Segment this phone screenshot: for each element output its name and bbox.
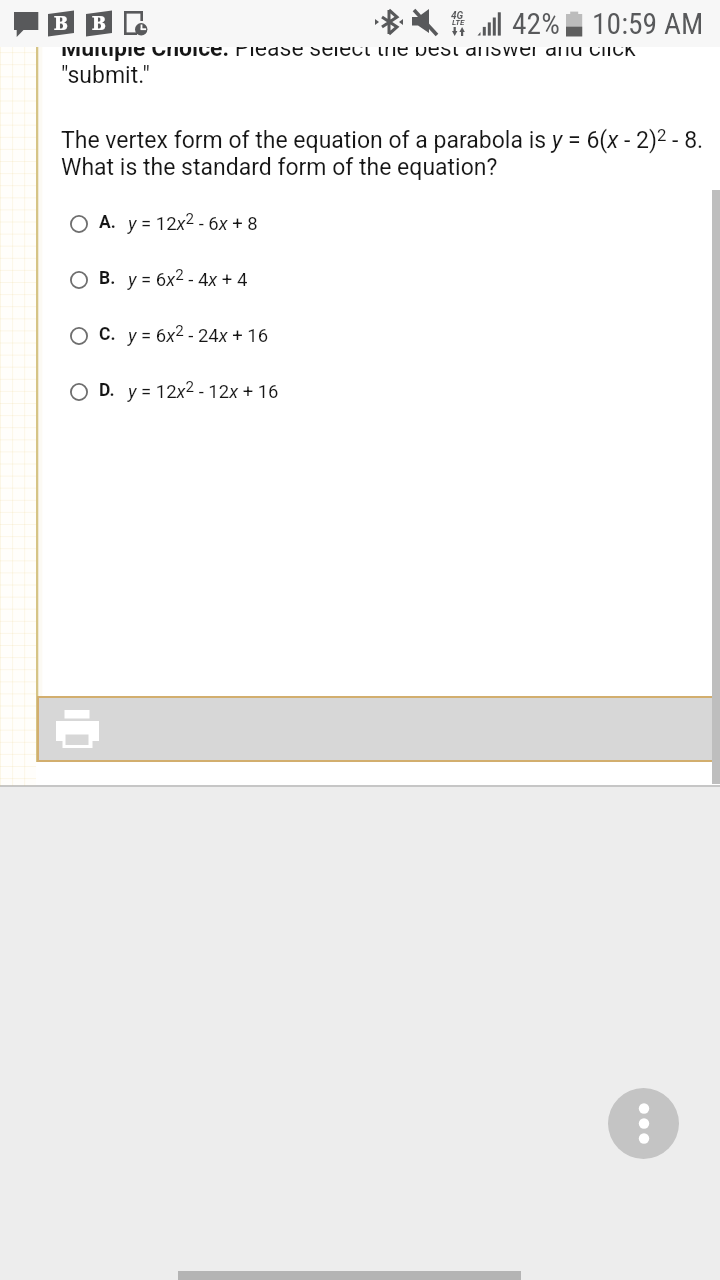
staticText: 42% (512, 7, 560, 42)
staticText: Multiple Choice: Please select the best … (61, 35, 706, 89)
staticText: y = 6x2 - 24x + 16 (128, 322, 269, 346)
staticText: C. (99, 324, 116, 345)
button[interactable]: More options (608, 1088, 679, 1159)
button[interactable]: D. (60, 366, 700, 418)
staticText: B. (99, 268, 116, 289)
staticText: The vertex form of the equation of a par… (61, 125, 706, 181)
staticText: y = 6x2 - 4x + 4 (128, 266, 248, 290)
staticText: B (54, 10, 68, 36)
staticText: D. (99, 380, 115, 401)
staticText: 4G (451, 10, 464, 22)
staticText: A. (99, 212, 116, 233)
staticText: LTE (452, 18, 465, 27)
staticText: 10:59 AM (592, 7, 704, 42)
button[interactable]: C. (60, 310, 700, 362)
button[interactable]: B. (60, 254, 700, 306)
staticText: y = 12x2 - 12x + 16 (128, 378, 279, 402)
staticText: y = 12x2 - 6x + 8 (128, 210, 258, 234)
button[interactable]: Print (54, 708, 100, 750)
staticText: B (92, 10, 106, 36)
button[interactable]: A. (60, 198, 700, 250)
